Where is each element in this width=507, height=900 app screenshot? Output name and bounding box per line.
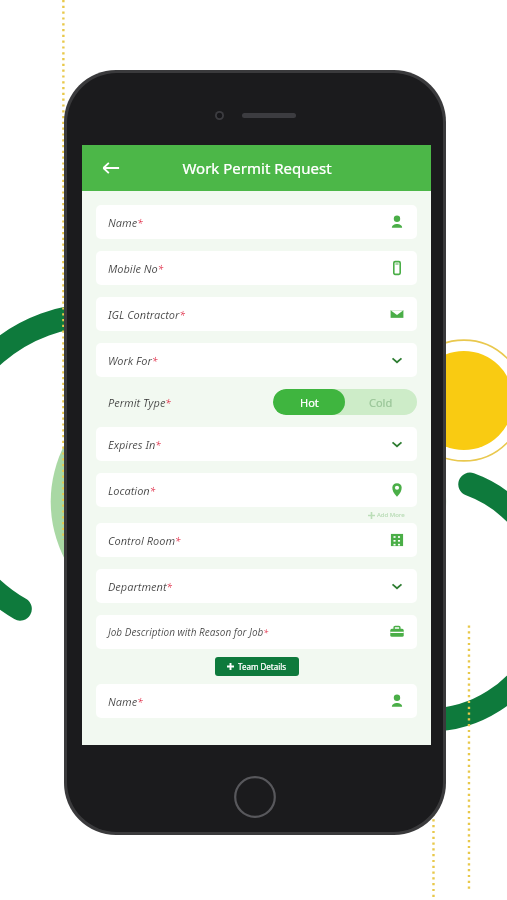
staticText: Cold	[369, 395, 393, 410]
button[interactable]: Team Details	[215, 657, 299, 676]
button[interactable]: Mobile No*	[96, 251, 417, 285]
button[interactable]: IGL Contractor*	[96, 297, 417, 331]
staticText: Team Details	[238, 661, 287, 672]
staticText: Work Permit Request	[182, 158, 332, 178]
staticText: Location*	[108, 483, 389, 498]
button[interactable]: Name*	[96, 205, 417, 239]
button[interactable]: Location*	[96, 473, 417, 507]
button[interactable]: Hot	[273, 389, 345, 415]
button[interactable]: Work For*	[96, 343, 417, 377]
staticText: Name*	[108, 694, 389, 709]
button[interactable]: Home	[234, 776, 276, 818]
button[interactable]: Expires In*	[96, 427, 417, 461]
button[interactable]: Name*	[96, 684, 417, 718]
staticText: Control Room*	[108, 533, 389, 548]
button[interactable]: Back	[96, 153, 126, 183]
staticText: Expires In*	[108, 437, 389, 452]
staticText: Hot	[300, 395, 319, 410]
staticText: Add More	[377, 511, 405, 519]
staticText: IGL Contractor*	[108, 307, 389, 322]
staticText: Name*	[108, 215, 389, 230]
button[interactable]: Department*	[96, 569, 417, 603]
staticText: Mobile No*	[108, 261, 389, 276]
button[interactable]: Cold	[345, 389, 417, 415]
staticText: Job Description with Reason for Job*	[108, 625, 389, 639]
button[interactable]: Job Description with Reason for Job*	[96, 615, 417, 649]
staticText: Department*	[108, 579, 389, 594]
button[interactable]: Add More	[96, 507, 417, 523]
button[interactable]: Control Room*	[96, 523, 417, 557]
staticText: Work For*	[108, 353, 389, 368]
staticText: Permit Type*	[108, 395, 171, 410]
